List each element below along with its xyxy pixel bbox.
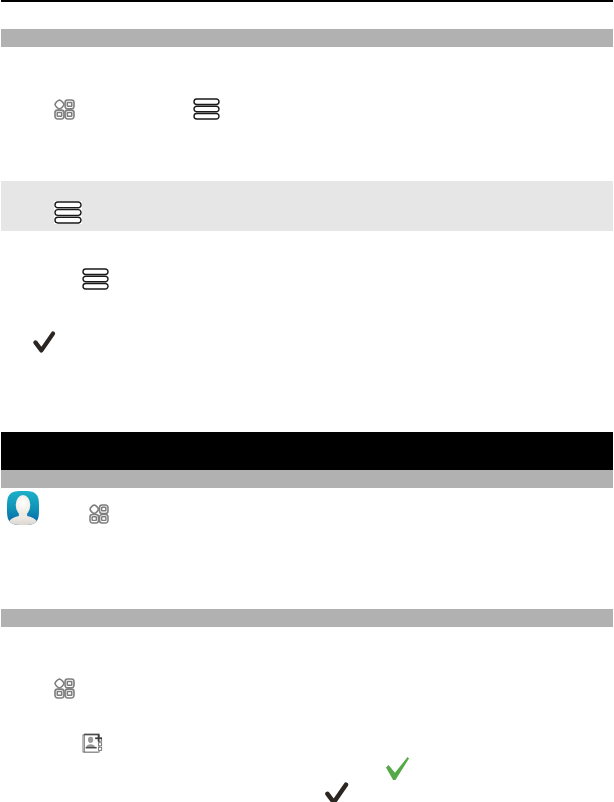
button[interactable]: Done [386, 757, 409, 780]
button[interactable]: Section menu [1, 181, 613, 231]
button[interactable]: Apps grid [90, 505, 108, 523]
button[interactable]: Confirm [326, 783, 347, 802]
button[interactable]: Section menu [55, 202, 81, 223]
button[interactable]: More options [194, 99, 219, 119]
button[interactable]: Add contact [83, 734, 102, 753]
button[interactable]: Apps grid [55, 100, 74, 119]
button[interactable]: Apps grid [55, 679, 74, 698]
button[interactable]: Row menu [83, 269, 108, 289]
button[interactable]: Contact photo [7, 491, 39, 525]
button[interactable]: Selected [34, 332, 54, 352]
